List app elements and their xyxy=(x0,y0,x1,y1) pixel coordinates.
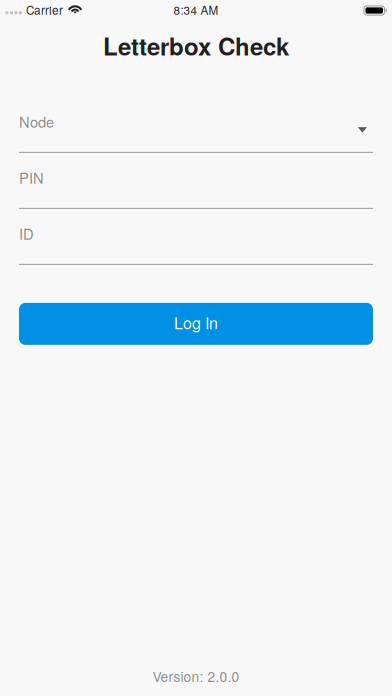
staticText: Node xyxy=(19,111,54,132)
button[interactable]: ID xyxy=(19,221,373,265)
staticText: Log In xyxy=(174,311,218,334)
staticText: Version: 2.0.0 xyxy=(152,666,239,686)
button[interactable]: Log In xyxy=(19,303,373,345)
button[interactable]: Node xyxy=(19,109,373,153)
staticText: PIN xyxy=(19,167,44,188)
staticText: Letterbox Check xyxy=(103,28,289,63)
staticText: 8:34 AM xyxy=(173,1,218,18)
button[interactable]: PIN xyxy=(19,165,373,209)
staticText: ID xyxy=(19,223,34,244)
staticText: Carrier xyxy=(26,1,63,18)
